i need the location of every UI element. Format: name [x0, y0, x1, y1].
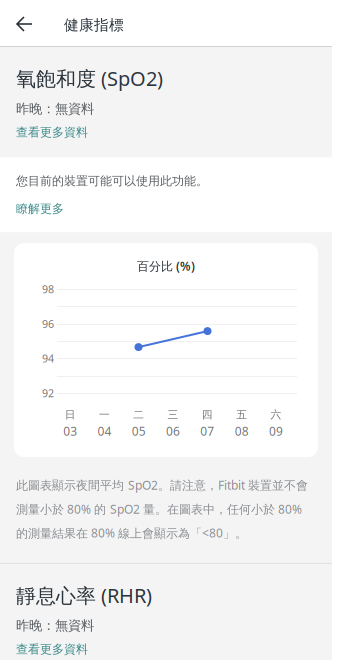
staticText: 06 [166, 423, 180, 439]
staticText: 四 [202, 408, 213, 421]
staticText: 一 [99, 408, 110, 421]
staticText: 五 [236, 408, 247, 421]
staticText: 98 [42, 282, 54, 296]
staticText: 03 [63, 423, 77, 439]
button[interactable]: 查看更多資料 [16, 117, 88, 158]
staticText: 您目前的裝置可能可以使用此功能。 [16, 174, 208, 188]
button[interactable]: 瞭解更多 [16, 188, 64, 232]
staticText: 94 [42, 351, 54, 365]
staticText: 瞭解更多 [16, 201, 64, 216]
staticText: 三 [167, 408, 178, 421]
staticText: 查看更多資料 [16, 125, 88, 140]
staticText: 昨晚：無資料 [16, 617, 94, 634]
staticText: 09 [269, 423, 283, 439]
button[interactable]: 查看更多資料 [16, 634, 88, 660]
staticText: 靜息心率 (RHR) [16, 582, 152, 608]
staticText: 此圖表顯示夜間平均 SpO2。請注意，Fitbit 裝置並不會測量小於 80% … [16, 477, 308, 541]
staticText: 昨晚：無資料 [16, 101, 94, 117]
staticText: 07 [200, 423, 214, 439]
staticText: 百分比 (%) [137, 258, 195, 274]
staticText: 96 [42, 317, 54, 331]
staticText: 04 [97, 423, 111, 439]
staticText: 92 [42, 386, 54, 400]
staticText: 08 [235, 423, 249, 439]
staticText: 日 [65, 408, 76, 421]
staticText: 六 [270, 408, 281, 421]
staticText: 氧飽和度 (SpO2) [16, 65, 163, 92]
staticText: 查看更多資料 [16, 642, 88, 657]
staticText: 健康指標 [64, 16, 124, 34]
button[interactable]: 返回 [0, 0, 64, 47]
staticText: 二 [133, 408, 144, 421]
staticText: 05 [132, 423, 146, 439]
